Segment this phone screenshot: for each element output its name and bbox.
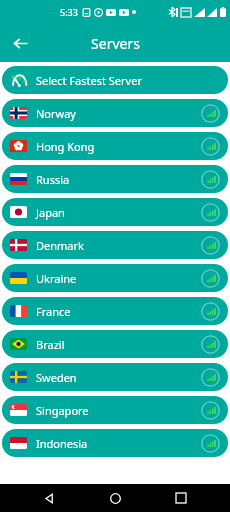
button[interactable]: Sweden [2, 363, 228, 391]
button[interactable]: Hong Kong [2, 132, 228, 160]
button[interactable]: Singapore [2, 396, 228, 424]
staticText: Ukraine [36, 271, 77, 286]
button[interactable]: Norway [2, 99, 228, 127]
button[interactable]: France [2, 297, 228, 325]
button[interactable]: Brazil [2, 330, 228, 358]
button[interactable]: Back [6, 29, 34, 57]
staticText: Norway [36, 106, 76, 121]
staticText: France [36, 304, 71, 319]
staticText: Denmark [36, 238, 84, 253]
button[interactable]: Denmark [2, 231, 228, 259]
staticText: Select Fastest Server [36, 73, 142, 88]
button[interactable]: Home [98, 484, 132, 512]
staticText: Japan [36, 205, 65, 220]
staticText: Hong Kong [36, 139, 95, 154]
staticText: Sweden [36, 370, 77, 385]
staticText: Singapore [36, 403, 89, 418]
button[interactable]: Russia [2, 165, 228, 193]
button[interactable]: Ukraine [2, 264, 228, 292]
button[interactable]: Back [32, 484, 66, 512]
button[interactable]: Indonesia [2, 429, 228, 457]
staticText: Russia [36, 172, 70, 187]
button[interactable]: Select Fastest Server [2, 66, 228, 94]
staticText: 5:33 [60, 6, 78, 18]
button[interactable]: Japan [2, 198, 228, 226]
staticText: Servers [91, 34, 140, 53]
staticText: Indonesia [36, 436, 88, 451]
staticText: Brazil [36, 337, 65, 352]
button[interactable]: Recent apps [164, 484, 198, 512]
